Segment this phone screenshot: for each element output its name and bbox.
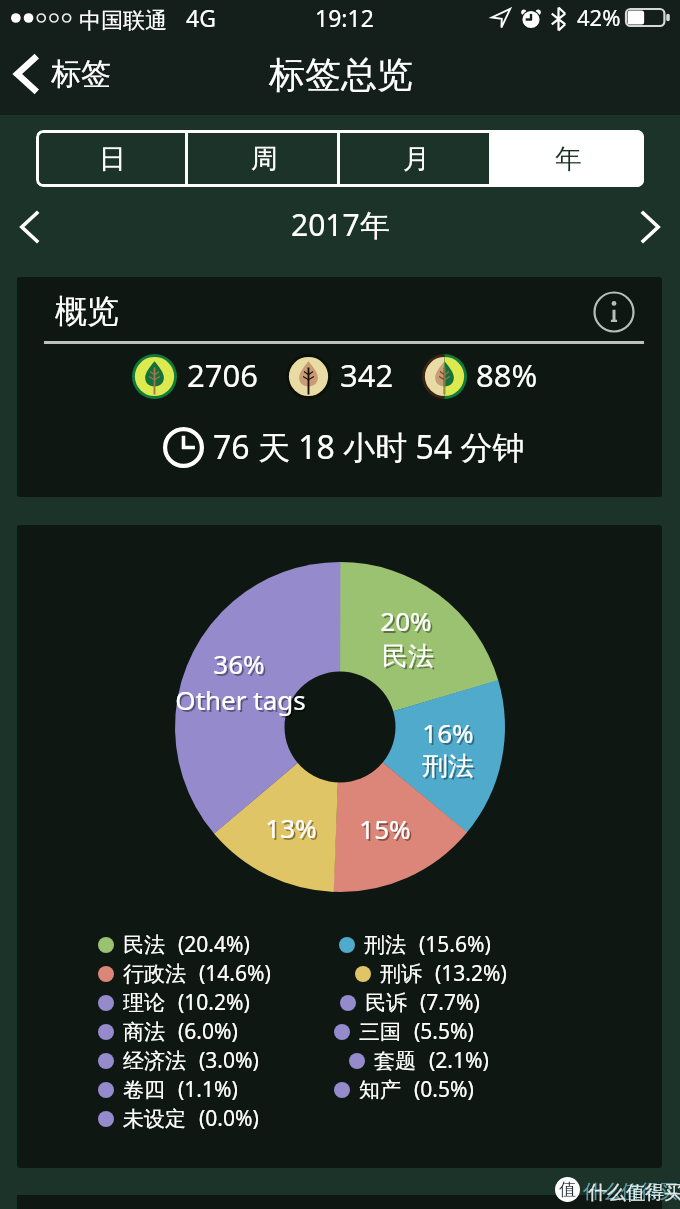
staticText: (14.6%) [199,959,271,988]
staticText: 民法 [382,640,434,673]
staticText: 标签总览 [269,52,413,97]
staticText: 中国联通 [79,7,167,35]
button[interactable]: 未设定 [98,1104,259,1133]
staticText: 2017年 [291,204,390,245]
staticText: 42% [577,2,621,32]
staticText: 理论 [123,990,165,1016]
button[interactable]: 经济法 [98,1046,259,1075]
staticText: 刑诉 [380,961,422,987]
staticText: 刑法 [364,932,406,958]
staticText: (15.6%) [419,930,491,959]
staticText: (20.4%) [178,930,250,959]
staticText: 行政法 [123,961,186,987]
staticText: (13.2%) [435,959,507,988]
button[interactable]: 卷四 [98,1075,238,1104]
staticText: 13% [267,812,319,847]
staticText: (1.1%) [178,1075,238,1104]
staticText: 知产 [359,1077,401,1103]
staticText: 36% [215,648,267,683]
staticText: 13% [265,810,317,845]
staticText: 19:12 [315,2,374,33]
button[interactable]: 周 [188,130,340,187]
button[interactable]: 知产 [334,1075,474,1104]
staticText: 什么值得买 [583,1180,678,1204]
button[interactable]: 民法 [98,930,250,959]
staticText: 套题 [374,1048,416,1074]
staticText: 日 [99,142,126,176]
button[interactable]: Previous year [5,199,55,254]
staticText: 刑法 [422,750,474,783]
staticText: (7.7%) [420,988,480,1017]
staticText: (5.5%) [414,1017,474,1046]
staticText: 商法 [123,1019,165,1045]
button[interactable]: 标签 [0,49,123,99]
button[interactable]: 民诉 [340,988,480,1017]
staticText: 民法 [384,642,436,675]
staticText: 4G [186,2,216,33]
button[interactable]: 日 [36,130,188,187]
staticText: 经济法 [123,1048,186,1074]
staticText: 16% [424,717,476,752]
staticText: (0.0%) [199,1104,259,1133]
staticText: 周 [251,142,278,176]
staticText: 标签 [51,55,111,93]
staticText: 36% [213,646,265,681]
staticText: 15% [361,813,413,848]
staticText: 20% [380,603,432,638]
button[interactable]: 套题 [349,1046,489,1075]
button[interactable]: Next year [625,199,675,254]
staticText: 月 [403,142,430,176]
staticText: 342 [340,354,394,396]
button[interactable]: 刑诉 [355,959,507,988]
staticText: 20% [382,605,434,640]
staticText: 2706 [187,354,258,396]
staticText: (2.1%) [429,1046,489,1075]
button[interactable]: 年 [492,130,644,187]
button[interactable]: 月 [340,130,492,187]
button[interactable]: Info [588,286,640,338]
staticText: 15% [359,811,411,846]
staticText: (3.0%) [199,1046,259,1075]
staticText: (6.0%) [178,1017,238,1046]
button[interactable]: 理论 [98,988,250,1017]
staticText: 三国 [359,1019,401,1045]
staticText: (10.2%) [178,988,250,1017]
staticText: (0.5%) [414,1075,474,1104]
staticText: 未设定 [123,1106,186,1132]
button[interactable]: 刑法 [339,930,491,959]
staticText: 民法 [123,932,165,958]
staticText: Other tags [175,682,306,717]
button[interactable]: 商法 [98,1017,238,1046]
staticText: 卷四 [123,1077,165,1103]
staticText: 刑法 [424,752,476,785]
staticText: 概览 [55,291,119,331]
button[interactable]: 行政法 [98,959,271,988]
button[interactable]: 三国 [334,1017,474,1046]
staticText: 年 [555,142,582,176]
staticText: Other tags [177,684,308,719]
staticText: 什么值得买 [588,1181,680,1205]
staticText: 76 天 18 小时 54 分钟 [213,425,525,469]
staticText: 88% [476,354,538,396]
staticText: 16% [422,715,474,750]
staticText: 民诉 [365,990,407,1016]
staticText: 值 [559,1179,576,1200]
